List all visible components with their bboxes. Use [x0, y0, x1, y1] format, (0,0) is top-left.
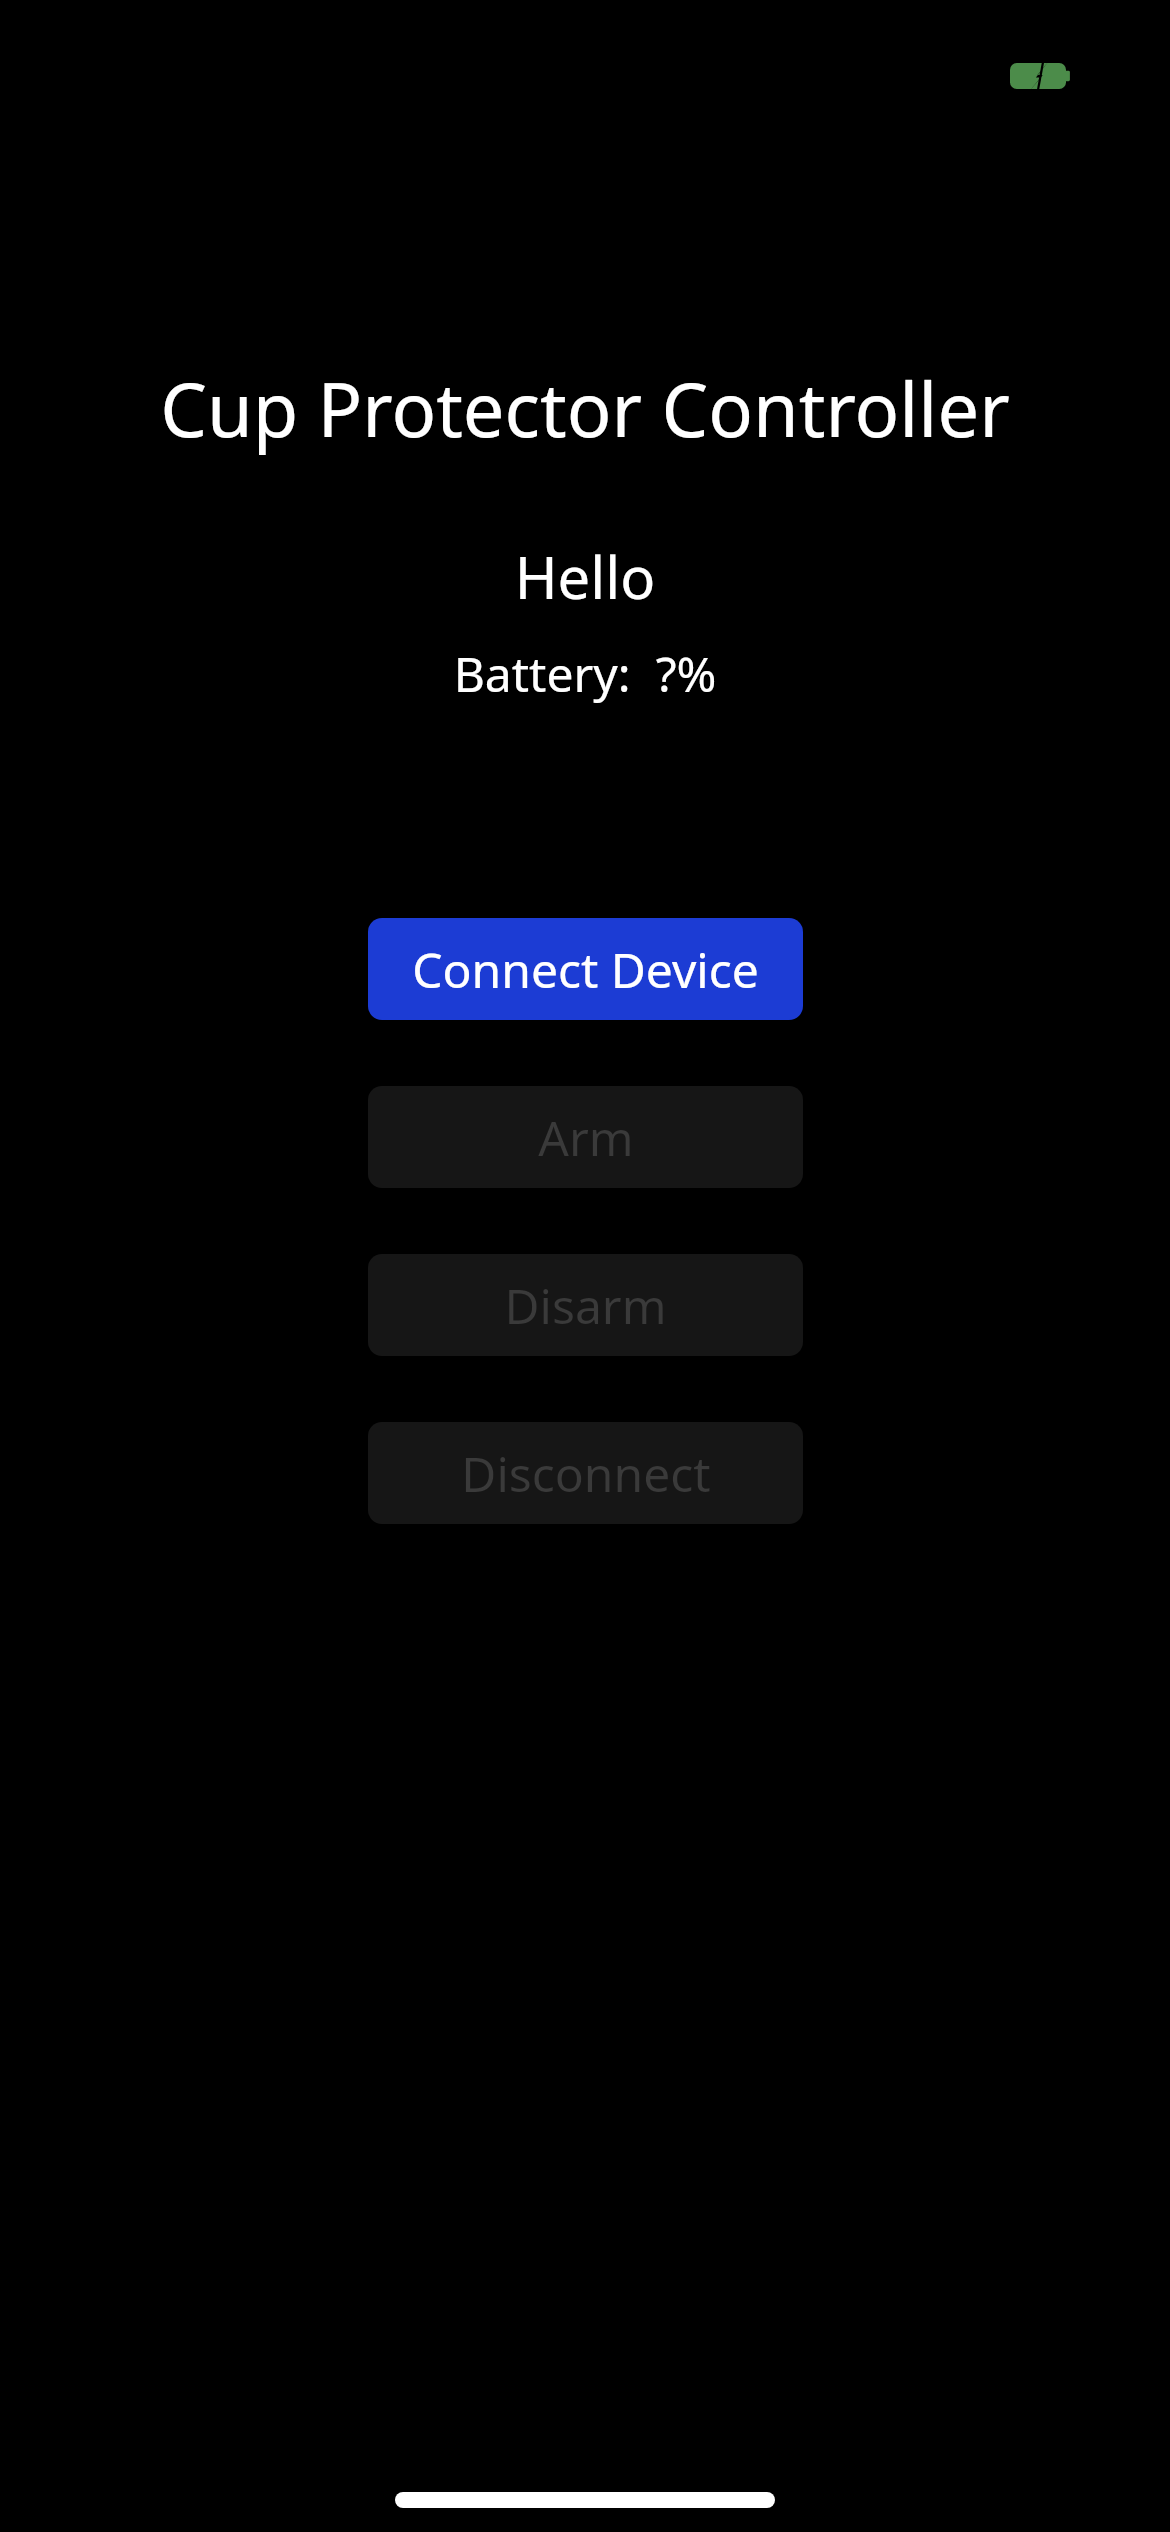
staticText: Disarm [504, 1273, 667, 1338]
button[interactable]: Arm [368, 1086, 803, 1188]
button[interactable]: Connect Device [368, 918, 803, 1020]
staticText: Cup Protector Controller [0, 358, 1170, 459]
staticText: Connect Device [412, 937, 759, 1002]
other: Battery charging [1010, 58, 1080, 94]
staticText: Battery: ?% [0, 641, 1170, 706]
staticText: Hello [0, 537, 1170, 616]
staticText: Disconnect [461, 1441, 711, 1506]
staticText: Arm [538, 1105, 634, 1170]
button[interactable]: Disconnect [368, 1422, 803, 1524]
button[interactable]: Disarm [368, 1254, 803, 1356]
